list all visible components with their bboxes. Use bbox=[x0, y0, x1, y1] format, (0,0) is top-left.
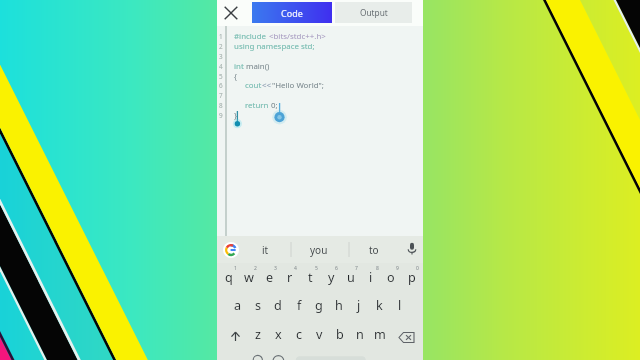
staticText: o bbox=[387, 269, 395, 286]
button[interactable]: b bbox=[330, 321, 350, 347]
staticText: 0 bbox=[416, 265, 419, 271]
staticText: <bits/stdc++.h> bbox=[269, 31, 326, 42]
staticText: g bbox=[315, 297, 323, 314]
button[interactable]: l bbox=[390, 292, 410, 318]
staticText: v bbox=[316, 326, 323, 343]
button[interactable]: z bbox=[248, 321, 268, 347]
staticText: 8 bbox=[219, 101, 223, 110]
button[interactable]: d bbox=[268, 292, 288, 318]
staticText: z bbox=[255, 326, 261, 343]
staticText: { bbox=[234, 71, 237, 82]
button[interactable]: you bbox=[295, 236, 343, 263]
button[interactable]: h bbox=[329, 292, 349, 318]
button[interactable]: q bbox=[219, 264, 239, 290]
staticText: 7 bbox=[355, 265, 358, 271]
button[interactable]: n bbox=[350, 321, 370, 347]
staticText: Output bbox=[360, 7, 388, 18]
staticText: cout bbox=[245, 80, 262, 91]
staticText: y bbox=[328, 269, 335, 286]
staticText: e bbox=[266, 269, 274, 286]
button[interactable]: t bbox=[300, 264, 320, 290]
staticText: 6 bbox=[219, 81, 223, 90]
staticText: 4 bbox=[219, 62, 223, 71]
staticText: "Hello World"; bbox=[272, 80, 324, 91]
staticText: q bbox=[225, 269, 233, 286]
button[interactable]: Google Search bbox=[223, 242, 239, 258]
button[interactable]: Code bbox=[252, 2, 332, 23]
staticText: 0; bbox=[271, 100, 278, 111]
button[interactable]: f bbox=[289, 292, 309, 318]
button[interactable]: g bbox=[309, 292, 329, 318]
staticText: d bbox=[274, 297, 282, 314]
staticText: t bbox=[308, 269, 313, 286]
button[interactable]: x bbox=[268, 321, 288, 347]
staticText: 4 bbox=[294, 265, 297, 271]
staticText: 5 bbox=[219, 72, 223, 81]
staticText: int bbox=[234, 61, 246, 72]
staticText: #include bbox=[234, 31, 269, 42]
button[interactable]: i bbox=[361, 264, 381, 290]
staticText: 3 bbox=[219, 52, 223, 61]
staticText: 5 bbox=[315, 265, 318, 271]
button[interactable]: Backspace bbox=[393, 324, 419, 350]
staticText: } bbox=[234, 110, 237, 121]
staticText: 6 bbox=[335, 265, 338, 271]
staticText: 8 bbox=[376, 265, 379, 271]
button[interactable]: r bbox=[280, 264, 300, 290]
staticText: it bbox=[262, 243, 269, 257]
button[interactable]: e bbox=[260, 264, 280, 290]
staticText: f bbox=[297, 297, 302, 314]
button[interactable]: k bbox=[369, 292, 389, 318]
staticText: j bbox=[357, 297, 361, 314]
button[interactable]: u bbox=[341, 264, 361, 290]
staticText: w bbox=[244, 269, 254, 286]
button[interactable]: y bbox=[321, 264, 341, 290]
staticText: x bbox=[275, 326, 282, 343]
staticText: b bbox=[336, 326, 344, 343]
button[interactable]: w bbox=[239, 264, 259, 290]
staticText: n bbox=[356, 326, 364, 343]
staticText: c bbox=[296, 326, 303, 343]
staticText: s bbox=[255, 297, 262, 314]
staticText: 9 bbox=[219, 111, 223, 120]
staticText: 2 bbox=[254, 265, 257, 271]
button[interactable]: Voice input bbox=[405, 242, 419, 256]
button[interactable]: j bbox=[349, 292, 369, 318]
staticText: you bbox=[310, 243, 328, 257]
button[interactable]: Shift bbox=[223, 324, 247, 348]
staticText: return bbox=[245, 100, 271, 111]
staticText: u bbox=[347, 269, 355, 286]
staticText: Code bbox=[281, 7, 303, 19]
button[interactable]: to bbox=[350, 236, 398, 263]
button[interactable]: o bbox=[381, 264, 401, 290]
staticText: l bbox=[398, 297, 402, 314]
staticText: << bbox=[262, 80, 272, 91]
staticText: r bbox=[287, 269, 293, 286]
button[interactable]: a bbox=[228, 292, 248, 318]
button[interactable]: Close bbox=[222, 4, 240, 22]
button[interactable]: p bbox=[402, 264, 422, 290]
staticText: to bbox=[369, 243, 379, 257]
staticText: 1 bbox=[219, 32, 223, 41]
staticText: using namespace std; bbox=[234, 41, 315, 52]
button[interactable]: m bbox=[370, 321, 390, 347]
staticText: 7 bbox=[219, 91, 223, 100]
button[interactable]: it bbox=[241, 236, 289, 263]
staticText: p bbox=[408, 269, 416, 286]
staticText: h bbox=[335, 297, 343, 314]
button[interactable]: s bbox=[248, 292, 268, 318]
button[interactable]: Output bbox=[335, 2, 412, 23]
staticText: 9 bbox=[396, 265, 399, 271]
button[interactable]: c bbox=[289, 321, 309, 347]
staticText: main() bbox=[246, 61, 270, 72]
staticText: i bbox=[369, 269, 373, 286]
staticText: 1 bbox=[234, 265, 237, 271]
staticText: 2 bbox=[219, 42, 223, 51]
staticText: a bbox=[234, 297, 242, 314]
staticText: m bbox=[374, 326, 386, 343]
button[interactable]: v bbox=[309, 321, 329, 347]
staticText: 3 bbox=[274, 265, 277, 271]
staticText: k bbox=[376, 297, 383, 314]
